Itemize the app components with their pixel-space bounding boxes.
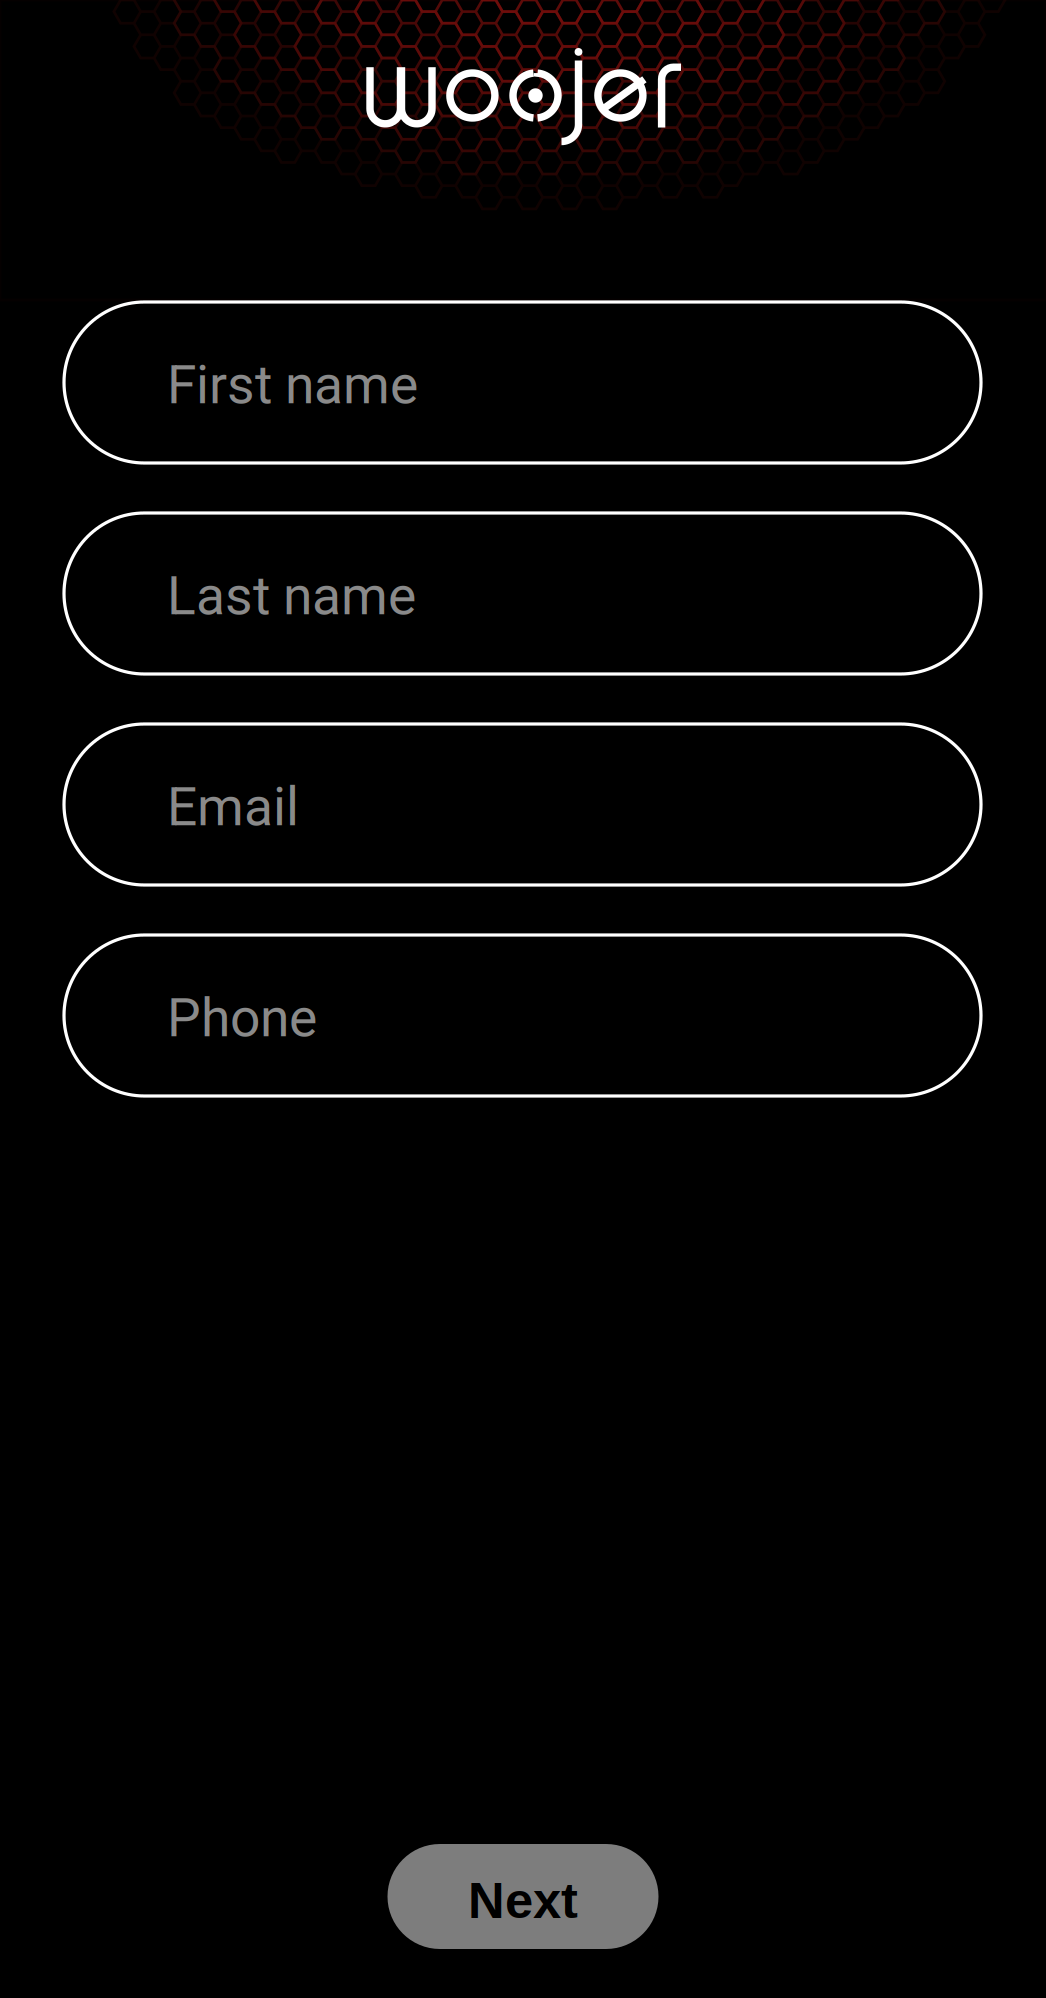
staticText: Email: [167, 776, 299, 838]
staticText: First name: [167, 354, 418, 416]
staticText: Next: [468, 1872, 578, 1929]
button[interactable]: Next: [387, 1844, 658, 1949]
button[interactable]: Last name: [64, 513, 981, 674]
button[interactable]: First name: [64, 302, 981, 463]
button[interactable]: Phone: [64, 935, 981, 1096]
staticText: Last name: [167, 565, 416, 627]
staticText: Phone: [167, 987, 317, 1049]
button[interactable]: Email: [64, 724, 981, 885]
